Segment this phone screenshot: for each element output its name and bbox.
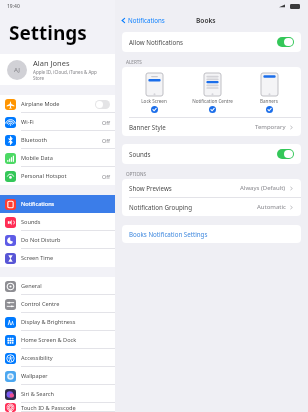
staticText: Notifications bbox=[21, 200, 110, 208]
staticText: Display & Brightness bbox=[21, 318, 110, 326]
button[interactable]: Home Screen & Dock bbox=[0, 331, 115, 349]
staticText: Show Previews bbox=[129, 184, 240, 192]
staticText: Banner Style bbox=[129, 123, 255, 131]
button[interactable]: Banner Style bbox=[129, 118, 294, 136]
staticText: Off bbox=[102, 119, 110, 126]
staticText: Banners bbox=[260, 98, 278, 104]
staticText: Notification Centre bbox=[192, 98, 233, 104]
button[interactable]: Wi-Fi bbox=[0, 113, 115, 131]
staticText: Books bbox=[196, 16, 216, 25]
staticText: Alan Jones bbox=[33, 58, 70, 68]
button[interactable]: Sounds bbox=[0, 213, 115, 231]
staticText: Home Screen & Dock bbox=[21, 336, 110, 344]
staticText: General bbox=[21, 282, 110, 290]
button[interactable]: Books Notification Settings bbox=[129, 225, 294, 243]
staticText: AJ bbox=[14, 66, 20, 74]
button[interactable]: Screen Time bbox=[0, 249, 115, 267]
staticText: OPTIONS bbox=[126, 171, 147, 177]
button[interactable]: Lock Screen bbox=[129, 73, 179, 113]
button[interactable]: Notifications bbox=[0, 195, 115, 213]
button[interactable]: Display & Brightness bbox=[0, 313, 115, 331]
button[interactable]: Touch ID & Passcode bbox=[0, 403, 115, 412]
staticText: Automatic bbox=[257, 203, 286, 211]
button[interactable]: Wallpaper bbox=[0, 367, 115, 385]
button[interactable]: Banners bbox=[244, 73, 294, 113]
staticText: Wi-Fi bbox=[21, 118, 102, 126]
staticText: Accessibility bbox=[21, 354, 110, 362]
button[interactable]: Personal Hotspot bbox=[0, 167, 115, 185]
staticText: Screen Time bbox=[21, 254, 110, 262]
staticText: Allow Notifications bbox=[129, 38, 277, 46]
staticText: Always (Default) bbox=[240, 184, 286, 192]
staticText: Bluetooth bbox=[21, 136, 102, 144]
staticText: Touch ID & Passcode bbox=[21, 404, 110, 412]
staticText: Sounds bbox=[129, 150, 277, 158]
staticText: Temporary bbox=[255, 123, 286, 131]
staticText: Off bbox=[102, 173, 110, 180]
button[interactable]: Sounds bbox=[129, 144, 294, 164]
button[interactable]: Toggle bbox=[277, 149, 294, 159]
button[interactable]: Show Previews bbox=[129, 179, 294, 197]
staticText: ALERTS bbox=[126, 59, 142, 65]
button[interactable]: Notifications bbox=[120, 16, 165, 24]
staticText: Settings bbox=[9, 20, 87, 46]
button[interactable]: Bluetooth bbox=[0, 131, 115, 149]
staticText: Personal Hotspot bbox=[21, 172, 102, 180]
staticText: 19:40 bbox=[7, 3, 20, 10]
button[interactable]: Siri & Search bbox=[0, 385, 115, 403]
staticText: Lock Screen bbox=[141, 98, 167, 104]
staticText: Off bbox=[102, 137, 110, 144]
staticText: Sounds bbox=[21, 218, 110, 226]
staticText: Siri & Search bbox=[21, 390, 110, 398]
staticText: Wallpaper bbox=[21, 372, 110, 380]
button[interactable]: Notification Grouping bbox=[129, 198, 294, 216]
button[interactable]: AJ bbox=[0, 54, 115, 85]
staticText: Notifications bbox=[128, 16, 165, 24]
staticText: Do Not Disturb bbox=[21, 236, 110, 244]
button[interactable]: Notification Centre bbox=[187, 73, 237, 113]
button[interactable]: Toggle bbox=[277, 37, 294, 47]
staticText: Airplane Mode bbox=[21, 100, 95, 108]
staticText: Mobile Data bbox=[21, 154, 110, 162]
button[interactable]: General bbox=[0, 277, 115, 295]
staticText: Books Notification Settings bbox=[129, 230, 208, 238]
button[interactable]: Accessibility bbox=[0, 349, 115, 367]
button[interactable]: Allow Notifications bbox=[129, 32, 294, 52]
button[interactable]: Mobile Data bbox=[0, 149, 115, 167]
staticText: Control Centre bbox=[21, 300, 110, 308]
button[interactable]: Control Centre bbox=[0, 295, 115, 313]
button[interactable]: Airplane Mode bbox=[0, 95, 115, 113]
staticText: Notification Grouping bbox=[129, 203, 257, 211]
staticText: Apple ID, iCloud, iTunes & App Store bbox=[33, 69, 108, 81]
button[interactable]: Do Not Disturb bbox=[0, 231, 115, 249]
